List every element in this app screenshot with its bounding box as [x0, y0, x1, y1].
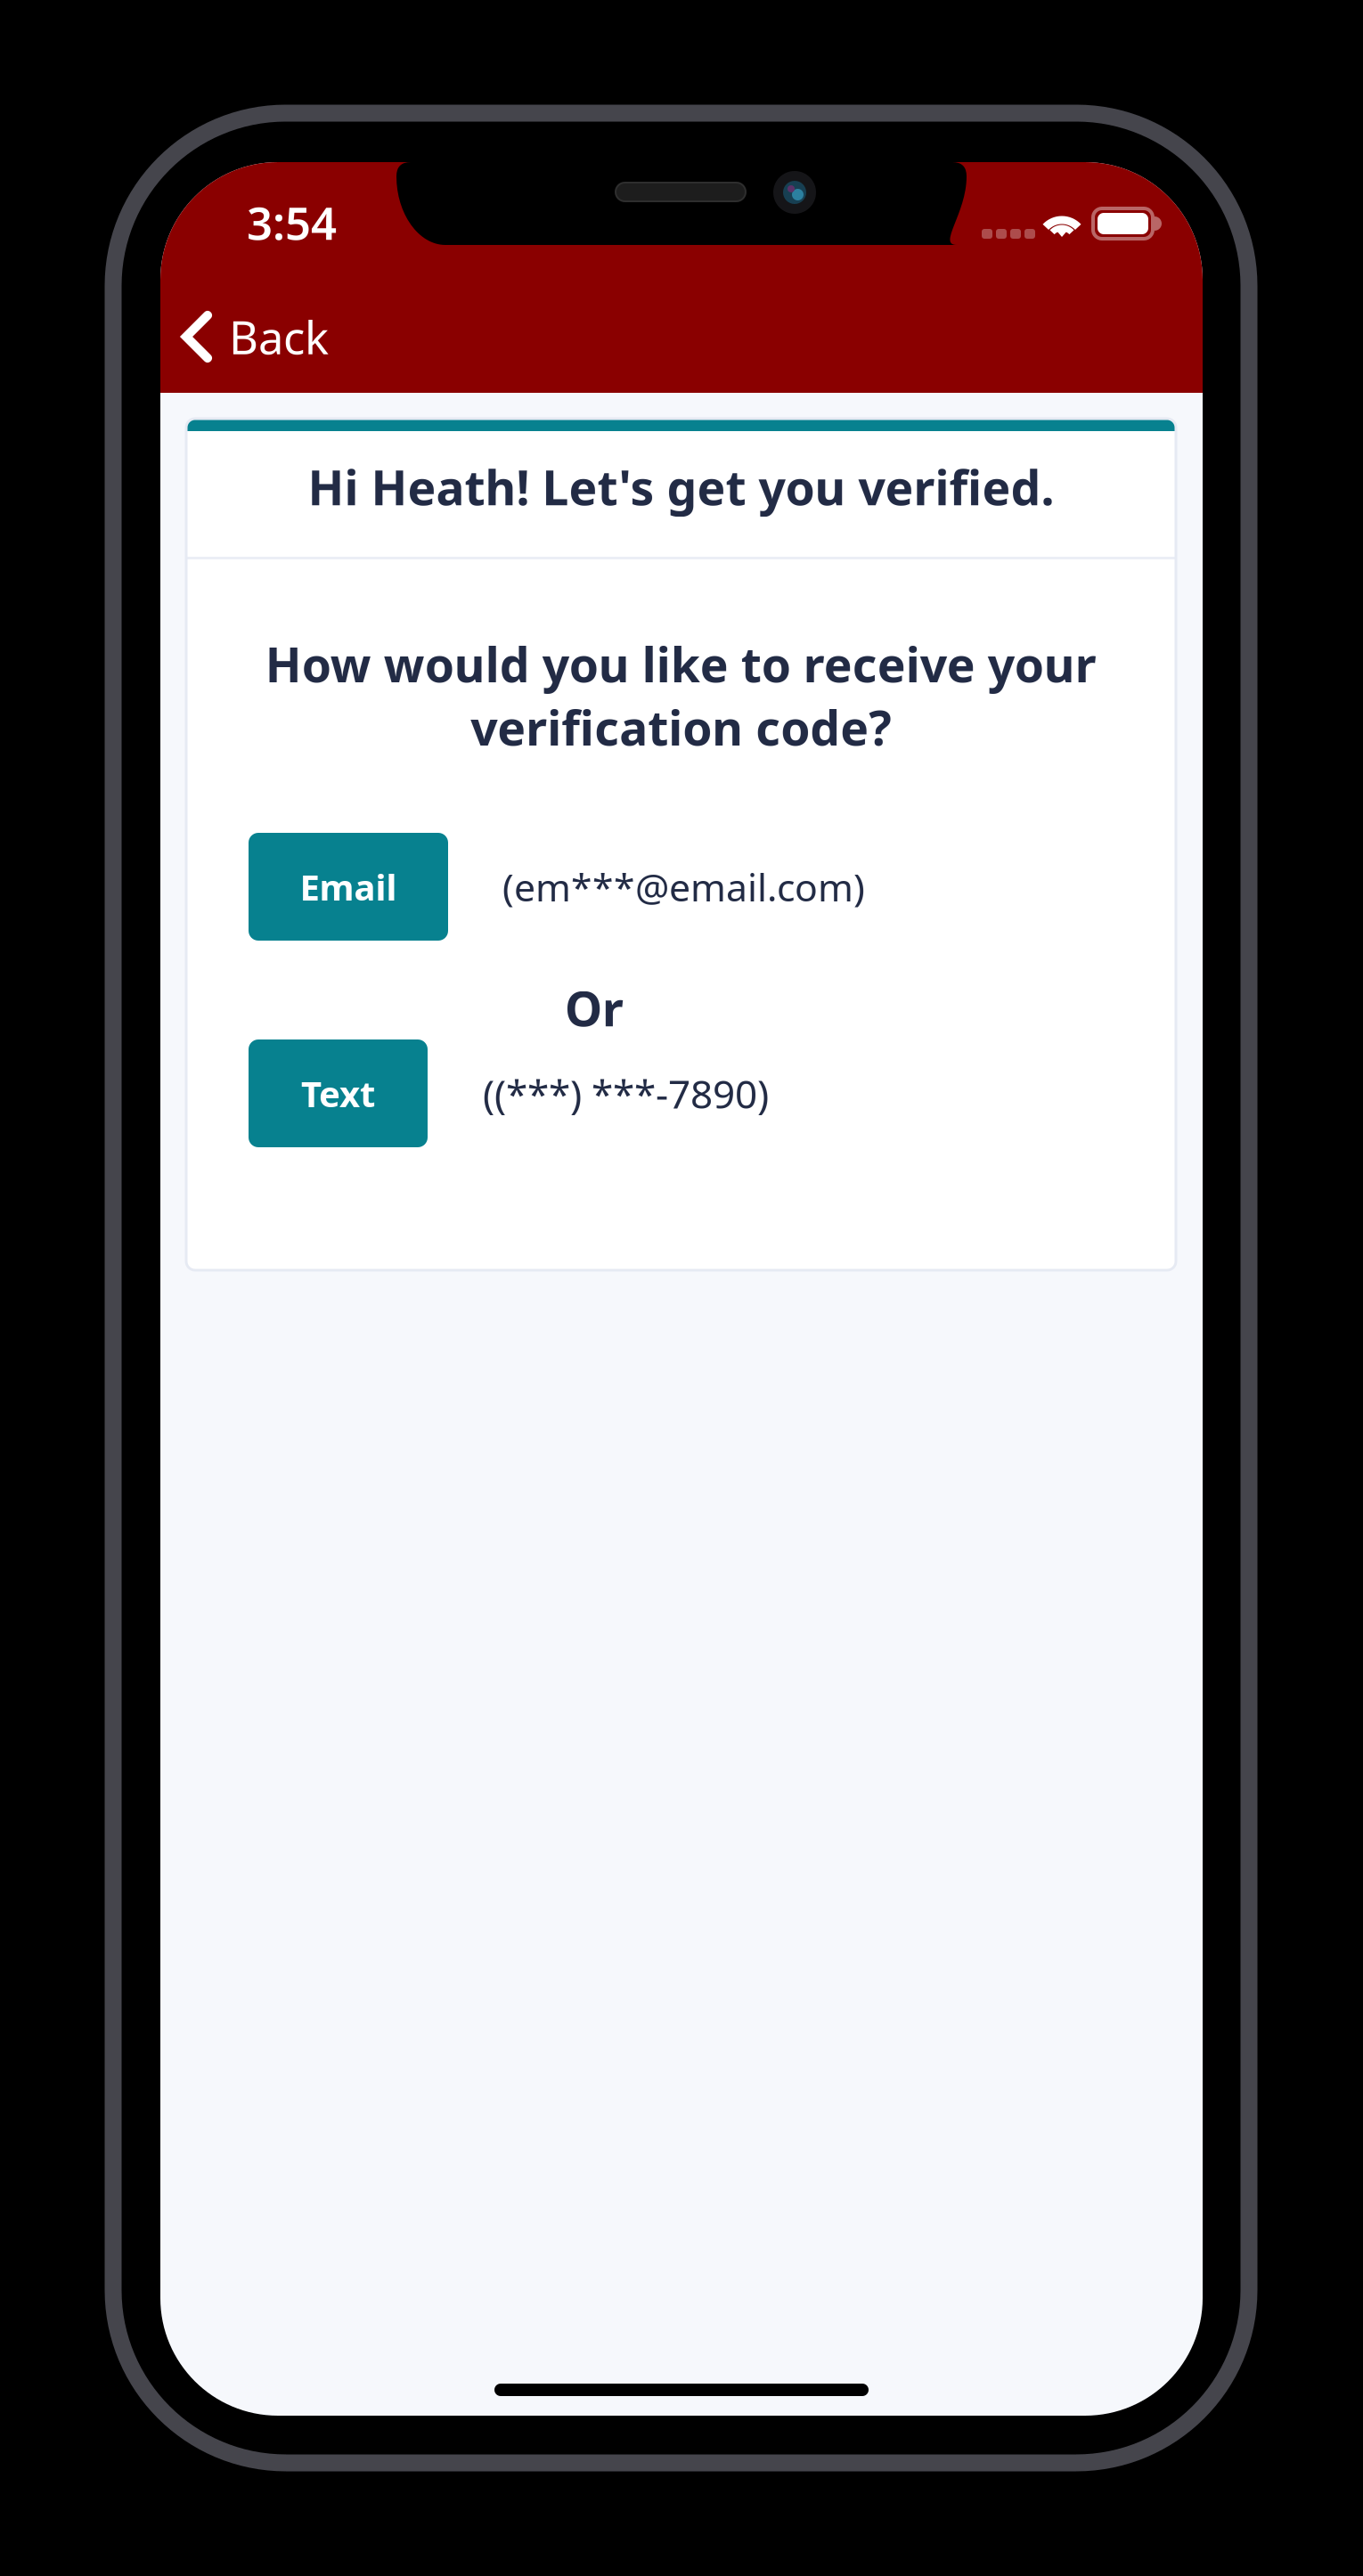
staticText: How would you like to receive your verif…: [265, 632, 1096, 759]
staticText: Or: [565, 976, 624, 1039]
staticText: Hi Heath! Let's get you verified.: [308, 455, 1054, 518]
staticText: 3:54: [247, 192, 337, 252]
staticText: (em***@email.com): [502, 862, 865, 912]
button[interactable]: Text: [249, 1039, 428, 1147]
staticText: Email: [300, 863, 397, 910]
staticText: ((***) ***-7890): [483, 1067, 769, 1119]
button[interactable]: Back: [160, 296, 428, 378]
staticText: Text: [301, 1070, 375, 1117]
button[interactable]: Email: [249, 833, 448, 941]
staticText: Back: [229, 307, 329, 367]
